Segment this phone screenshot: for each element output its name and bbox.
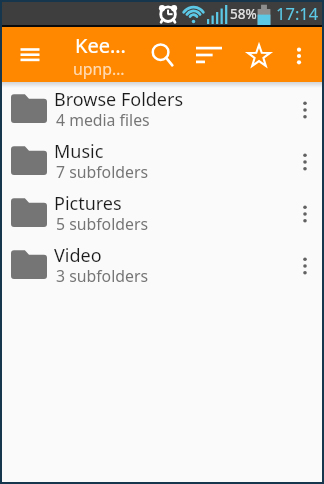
button[interactable]: More options for Video (287, 246, 321, 286)
button[interactable]: Browse Folders (2, 82, 322, 134)
button[interactable]: Open navigation drawer (6, 30, 50, 74)
button[interactable]: More options for Music (287, 142, 321, 182)
staticText: 4 media files (56, 109, 150, 131)
staticText: Kee… (75, 32, 126, 59)
staticText: 3 subfolders (56, 265, 148, 287)
staticText: 58% (230, 5, 257, 23)
staticText: 17:14 (276, 2, 319, 24)
button[interactable]: Search (142, 35, 186, 79)
staticText: Video (54, 243, 102, 268)
staticText: upnp… (73, 58, 125, 80)
staticText: 5 subfolders (56, 213, 148, 235)
staticText: 7 subfolders (56, 161, 148, 183)
button[interactable]: Video (2, 238, 322, 290)
button[interactable]: More options for Pictures (287, 194, 321, 234)
button[interactable]: Pictures (2, 186, 322, 238)
staticText: Browse Folders (54, 87, 184, 112)
staticText: Music (54, 139, 104, 164)
button[interactable]: Favorites (237, 34, 281, 78)
staticText: Pictures (54, 191, 122, 216)
button[interactable]: More options (277, 34, 321, 78)
button[interactable]: Music (2, 134, 322, 186)
button[interactable]: More options for Browse Folders (287, 90, 321, 130)
button[interactable]: Sort (187, 33, 231, 77)
